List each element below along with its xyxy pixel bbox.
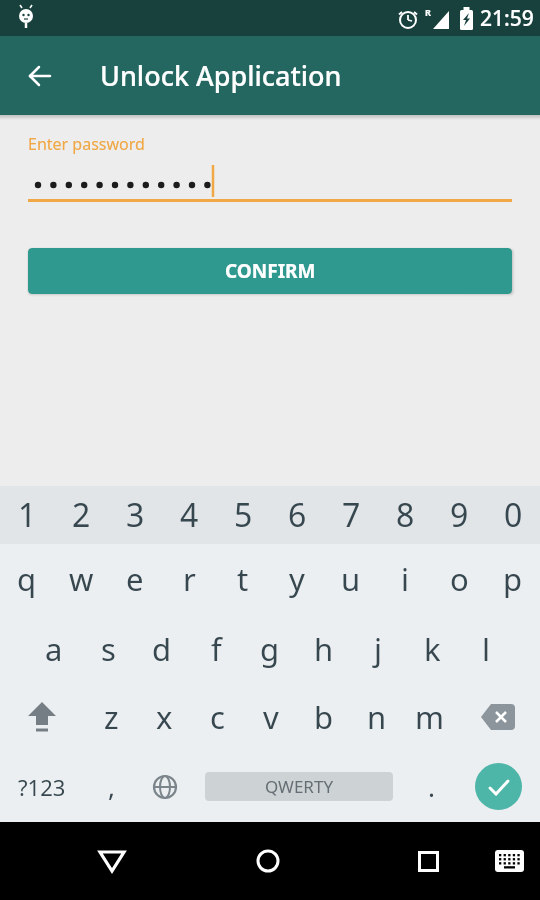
button[interactable]: v <box>244 683 297 751</box>
button[interactable]: i <box>378 544 432 614</box>
button[interactable]: g <box>243 614 297 683</box>
button[interactable]: f <box>189 614 243 683</box>
staticText: 8 <box>396 493 415 537</box>
staticText: m <box>415 696 444 738</box>
button[interactable]: d <box>135 614 189 683</box>
button[interactable]: CONFIRM <box>28 248 512 294</box>
staticText: 0 <box>504 493 523 537</box>
button[interactable]: q <box>0 544 54 614</box>
button[interactable]: e <box>108 544 162 614</box>
staticText: 6 <box>288 493 307 537</box>
staticText: l <box>482 628 490 670</box>
staticText: e <box>126 558 144 600</box>
staticText: g <box>260 628 280 670</box>
button[interactable]: m <box>403 683 456 751</box>
staticText: d <box>152 628 172 670</box>
staticText: f <box>211 628 222 670</box>
button[interactable]: 0 <box>486 486 540 544</box>
staticText: q <box>17 558 37 600</box>
button[interactable]: s <box>81 614 135 683</box>
staticText: 3 <box>126 493 145 537</box>
button[interactable] <box>456 683 540 751</box>
staticText: 4 <box>180 493 199 537</box>
button[interactable]: t <box>216 544 270 614</box>
button[interactable]: 5 <box>216 486 270 544</box>
staticText: Unlock Application <box>100 57 342 94</box>
staticText: 9 <box>450 493 469 537</box>
button[interactable] <box>456 751 540 822</box>
button[interactable]: 6 <box>270 486 324 544</box>
staticText: 2 <box>72 493 91 537</box>
staticText: k <box>424 628 441 670</box>
staticText: a <box>45 628 63 670</box>
button[interactable] <box>87 822 137 900</box>
staticText: c <box>210 696 225 738</box>
button[interactable]: b <box>297 683 350 751</box>
staticText: , <box>108 769 115 804</box>
staticText: i <box>401 558 409 600</box>
button[interactable]: r <box>162 544 216 614</box>
staticText: . <box>428 769 435 804</box>
staticText: w <box>69 558 94 600</box>
button[interactable]: y <box>270 544 324 614</box>
button[interactable]: 3 <box>108 486 162 544</box>
button[interactable]: h <box>297 614 351 683</box>
button[interactable]: w <box>54 544 108 614</box>
staticText: n <box>367 696 387 738</box>
staticText: 7 <box>342 493 361 537</box>
staticText: ?123 <box>18 772 66 802</box>
staticText: b <box>314 696 334 738</box>
staticText: x <box>156 696 173 738</box>
staticText: t <box>237 558 249 600</box>
staticText: 5 <box>234 493 253 537</box>
staticText: j <box>374 628 382 670</box>
button[interactable]: u <box>324 544 378 614</box>
button[interactable]: 1 <box>0 486 54 544</box>
button[interactable]: k <box>405 614 459 683</box>
staticText: u <box>341 558 361 600</box>
button[interactable]: 9 <box>432 486 486 544</box>
button[interactable]: c <box>191 683 244 751</box>
button[interactable]: p <box>486 544 540 614</box>
staticText: QWERTY <box>265 775 334 798</box>
button[interactable]: 8 <box>378 486 432 544</box>
button[interactable]: l <box>459 614 513 683</box>
staticText: CONFIRM <box>225 258 316 284</box>
staticText: r <box>183 558 196 600</box>
staticText: p <box>503 558 523 600</box>
staticText: s <box>101 628 116 670</box>
button[interactable]: o <box>432 544 486 614</box>
button[interactable]: . <box>406 751 456 822</box>
button[interactable]: n <box>350 683 403 751</box>
button[interactable] <box>138 751 192 822</box>
staticText: z <box>104 696 119 738</box>
staticText: R <box>425 6 431 18</box>
button[interactable]: z <box>84 683 138 751</box>
staticText: 21:59 <box>480 4 534 33</box>
button[interactable]: , <box>84 751 138 822</box>
button[interactable]: a <box>27 614 81 683</box>
staticText: 1 <box>18 493 37 537</box>
button[interactable]: j <box>351 614 405 683</box>
button[interactable] <box>487 822 531 900</box>
button[interactable]: 7 <box>324 486 378 544</box>
button[interactable]: ?123 <box>0 751 84 822</box>
button[interactable] <box>0 683 84 751</box>
button[interactable] <box>403 822 453 900</box>
button[interactable]: 2 <box>54 486 108 544</box>
button[interactable]: QWERTY <box>205 772 393 801</box>
button[interactable] <box>243 822 293 900</box>
staticText: y <box>289 558 305 600</box>
staticText: v <box>263 696 279 738</box>
button[interactable]: x <box>138 683 191 751</box>
staticText: o <box>450 558 469 600</box>
button[interactable] <box>12 48 68 104</box>
button[interactable]: 4 <box>162 486 216 544</box>
staticText: h <box>314 628 334 670</box>
staticText: Enter password <box>28 133 145 155</box>
